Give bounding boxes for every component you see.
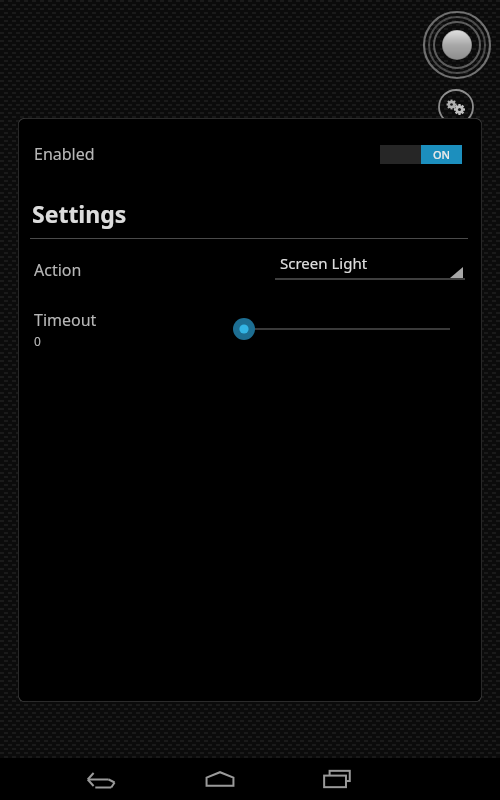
staticText: Settings (32, 198, 127, 229)
button[interactable]: Home (199, 762, 241, 796)
button[interactable]: Enabled (18, 118, 482, 190)
button[interactable]: Recent apps (317, 762, 359, 796)
staticText: 0 (34, 333, 41, 349)
staticText: Enabled (34, 143, 95, 165)
staticText: Action (34, 259, 82, 281)
button[interactable]: Action (18, 239, 482, 301)
staticText: ON (433, 147, 451, 162)
button[interactable]: Back (81, 762, 123, 796)
staticText: Screen Light (280, 253, 368, 273)
button[interactable]: Record (422, 10, 492, 80)
button[interactable]: Timeout slider (230, 314, 450, 344)
button[interactable]: Settings (437, 88, 475, 126)
staticText: Timeout (34, 309, 97, 331)
